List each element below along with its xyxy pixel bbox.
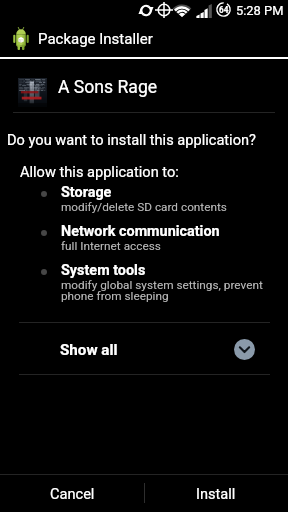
staticText: Cancel xyxy=(50,485,95,502)
staticText: full Internet access xyxy=(61,239,161,253)
staticText: Install xyxy=(196,485,236,502)
staticText: Do you want to install this application? xyxy=(7,131,256,148)
other: Battery 64 percent xyxy=(216,2,231,17)
staticText: Allow this application to: xyxy=(20,163,179,180)
other: Package Installer icon xyxy=(13,27,29,52)
staticText: Package Installer xyxy=(38,30,153,48)
other: Show all permissions xyxy=(234,339,255,360)
other: Wi-Fi xyxy=(173,2,191,17)
staticText: modify/delete SD card contents xyxy=(61,200,227,214)
staticText: Show all xyxy=(60,341,118,359)
button[interactable]: Cancel xyxy=(0,475,144,512)
staticText: System tools xyxy=(61,262,146,279)
staticText: A Sons Rage xyxy=(58,77,158,98)
staticText: 64 xyxy=(219,5,229,15)
staticText: Network communication xyxy=(61,223,220,240)
button[interactable]: Show all xyxy=(0,323,288,374)
other: Sync xyxy=(139,4,153,17)
staticText: 5:28 PM xyxy=(236,3,284,18)
other: Signal xyxy=(196,3,211,18)
other: Location xyxy=(155,2,173,18)
staticText: modify global system settings, prevent p… xyxy=(61,278,263,303)
staticText: Storage xyxy=(61,184,112,201)
button[interactable]: Install xyxy=(144,475,288,512)
